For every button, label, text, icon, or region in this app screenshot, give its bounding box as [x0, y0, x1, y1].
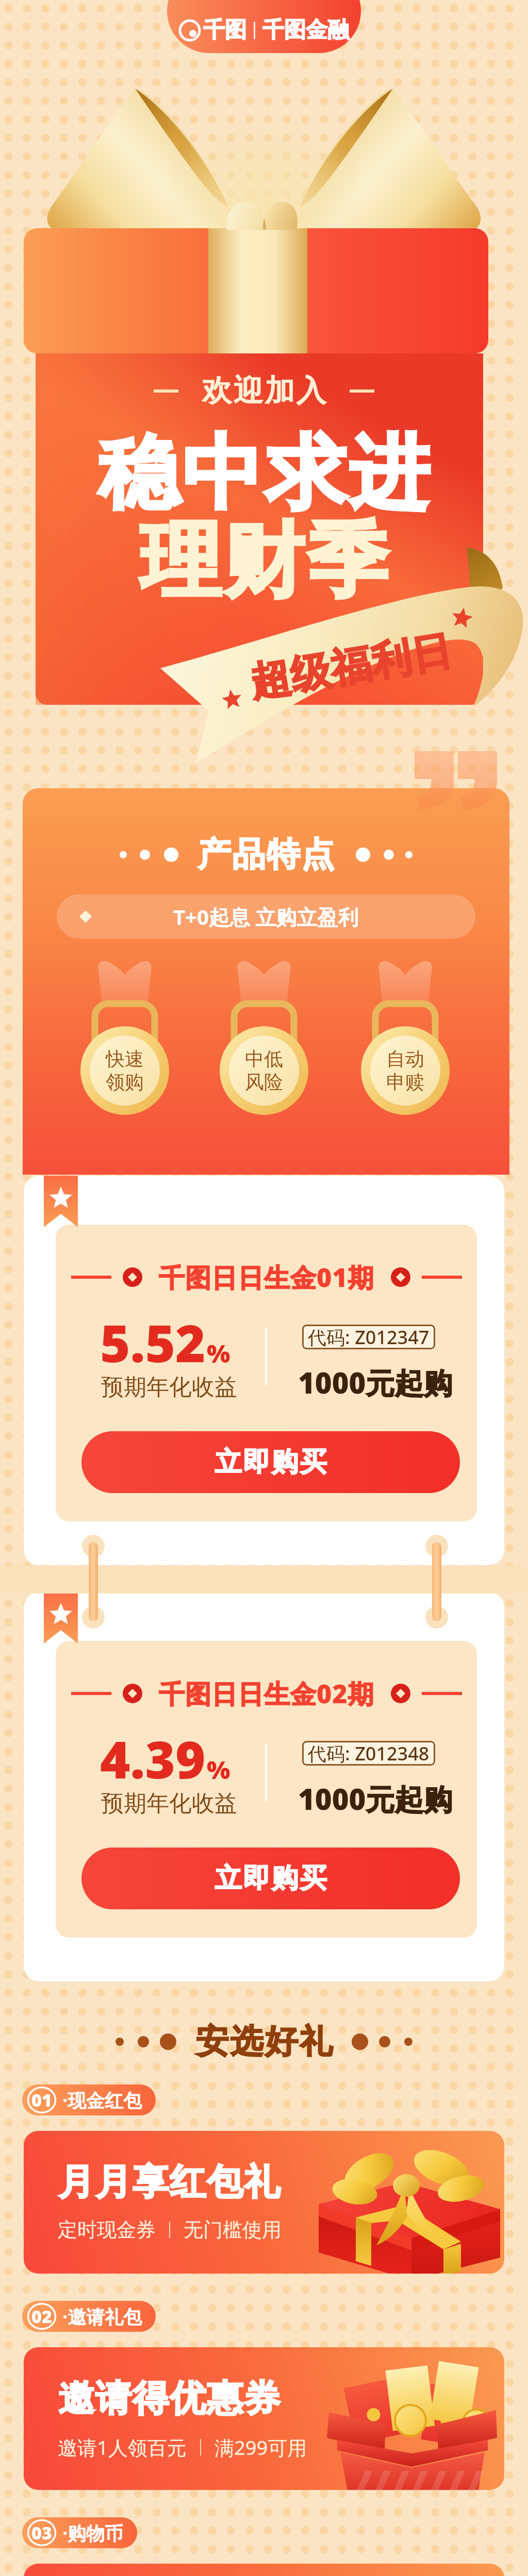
button[interactable]: 01	[22, 2084, 156, 2115]
staticText: 代码: Z012348	[308, 1741, 430, 1766]
button[interactable]: 02	[22, 2301, 156, 2332]
staticText: 预期年化收益	[101, 1789, 237, 1818]
button[interactable]: 立即购买	[81, 1431, 460, 1493]
other: Featured	[44, 1592, 78, 1643]
staticText: 千图日日生金01期	[159, 1260, 374, 1295]
staticText: %	[207, 1753, 230, 1786]
staticText: 1000元起购	[298, 1779, 453, 1818]
staticText: 邀请1人领百元	[58, 2434, 187, 2461]
button[interactable]: 立即购买	[81, 1848, 460, 1909]
staticText: T+0起息 立购立盈利	[173, 903, 359, 931]
button[interactable]: 月月享红包礼	[24, 2131, 504, 2274]
staticText: ·邀请礼包	[62, 2304, 142, 2329]
staticText: 代码: Z012347	[308, 1325, 430, 1349]
button[interactable]: 千图	[167, 0, 361, 53]
button[interactable]: 千图日日生金01期	[56, 1225, 477, 1521]
staticText: 02	[31, 2304, 52, 2328]
staticText: 01	[31, 2088, 52, 2112]
button[interactable]: 签到得金币	[24, 2564, 504, 2576]
staticText: 定时现金券	[58, 2217, 156, 2242]
staticText: 5.52	[100, 1307, 206, 1377]
staticText: 超级福利日	[246, 625, 455, 708]
staticText: 立即购买	[214, 1445, 327, 1479]
staticText: 中低 风险	[245, 1047, 283, 1094]
staticText: %	[207, 1336, 230, 1370]
button[interactable]: 千图日日生金02期	[56, 1641, 477, 1938]
staticText: 1000元起购	[298, 1363, 453, 1402]
button[interactable]: 邀请得优惠券	[24, 2347, 504, 2490]
staticText: 4.39	[100, 1723, 206, 1793]
staticText: 邀请得优惠券	[58, 2376, 280, 2421]
staticText: 自动 申赎	[386, 1047, 424, 1094]
staticText: 理财季	[139, 511, 389, 613]
staticText: 快速 领购	[106, 1047, 144, 1094]
staticText: 无门槛使用	[184, 2217, 282, 2242]
staticText: 安选好礼	[195, 2021, 333, 2062]
staticText: 欢迎加入	[201, 372, 327, 410]
staticText: ·现金红包	[62, 2088, 142, 2113]
staticText: 满299可用	[214, 2434, 307, 2461]
staticText: ·购物币	[62, 2520, 124, 2546]
button[interactable]: 03	[22, 2517, 137, 2548]
staticText: 月月享红包礼	[58, 2160, 280, 2205]
staticText: 千图日日生金02期	[159, 1676, 374, 1711]
staticText: 预期年化收益	[101, 1373, 237, 1401]
staticText: 产品特点	[197, 834, 335, 875]
staticText: 03	[31, 2521, 52, 2545]
staticText: 稳中求进	[97, 423, 431, 525]
staticText: 立即购买	[214, 1861, 327, 1895]
other: Featured	[44, 1176, 78, 1227]
staticText: 千图	[203, 16, 246, 44]
staticText: 千图金融	[262, 16, 349, 44]
